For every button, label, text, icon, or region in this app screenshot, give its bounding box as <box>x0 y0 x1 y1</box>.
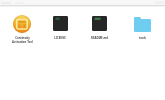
staticText: tools <box>139 36 146 40</box>
button[interactable]: LICENSE <box>40 13 80 46</box>
staticText: README.md <box>91 36 108 40</box>
staticText: Activation Tool <box>12 40 33 44</box>
staticText: LICENSE <box>54 36 66 40</box>
button[interactable]: tools <box>122 13 162 46</box>
button[interactable]: Continuity <box>2 13 42 46</box>
staticText: Continuity <box>15 36 30 40</box>
button[interactable]: README.md <box>79 13 119 46</box>
